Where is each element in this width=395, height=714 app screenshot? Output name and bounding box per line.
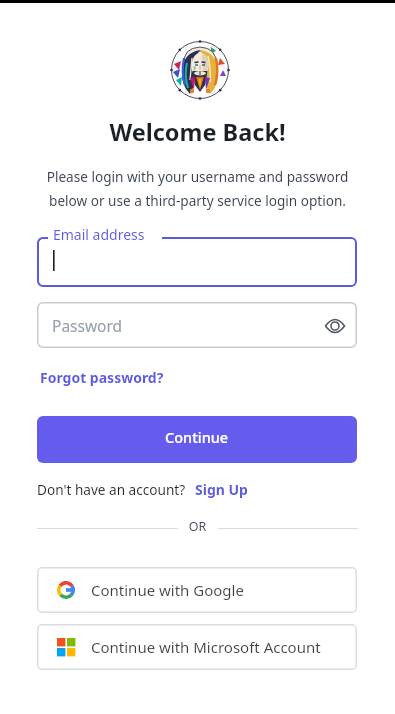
staticText: Don't have an account?	[37, 480, 186, 499]
button[interactable]: Email address	[37, 237, 357, 287]
staticText: Continue with Google	[91, 580, 244, 600]
staticText: Welcome Back!	[0, 116, 395, 148]
staticText: Please login with your username and pass…	[0, 167, 395, 210]
staticText: Password	[52, 315, 123, 336]
button[interactable]: Forgot password?	[40, 368, 164, 387]
button[interactable]: Password	[37, 302, 357, 348]
button[interactable]: Continue	[37, 416, 357, 463]
staticText: Continue with Microsoft Account	[91, 637, 321, 657]
button[interactable]: Continue with Microsoft Account	[37, 624, 357, 670]
staticText: Continue	[165, 427, 229, 447]
staticText: Email address	[53, 225, 145, 244]
button[interactable]: Sign Up	[195, 480, 248, 499]
staticText: OR	[0, 518, 395, 535]
button[interactable]: Continue with Google	[37, 567, 357, 613]
